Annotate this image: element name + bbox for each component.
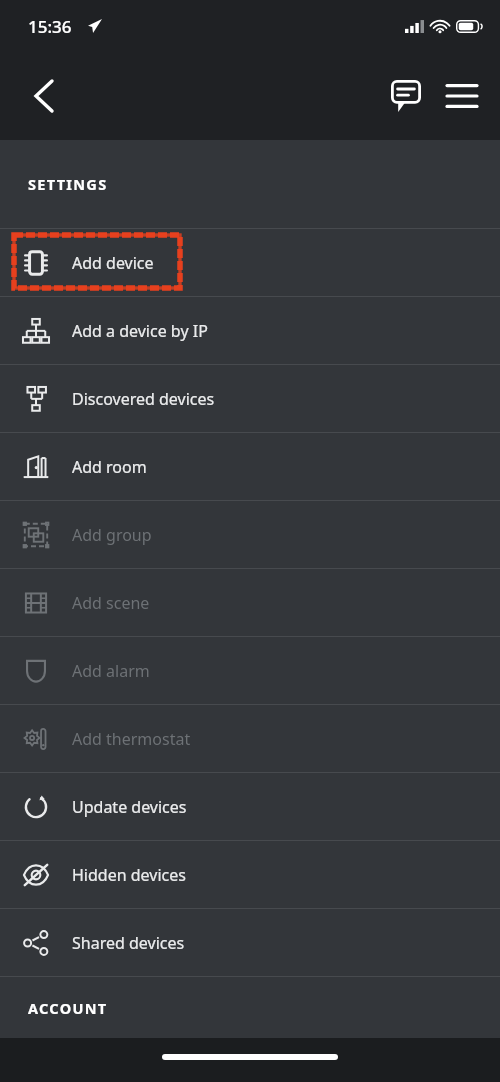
staticText: Add alarm	[72, 660, 150, 682]
button[interactable]: Add thermostat	[0, 705, 500, 772]
button[interactable]: Add group	[0, 501, 500, 568]
staticText: Hidden devices	[72, 864, 186, 886]
staticText: Add thermostat	[72, 728, 191, 750]
staticText: Shared devices	[72, 932, 185, 954]
staticText: Add room	[72, 456, 147, 478]
button[interactable]: Update devices	[0, 773, 500, 840]
button[interactable]: Back	[14, 66, 74, 126]
staticText: 15:36	[28, 15, 72, 38]
staticText: Update devices	[72, 796, 187, 818]
button[interactable]: Menu	[434, 68, 490, 124]
staticText: ACCOUNT	[28, 998, 108, 1018]
button[interactable]: Add a device by IP	[0, 297, 500, 364]
button[interactable]: Add device	[0, 229, 500, 296]
button[interactable]: Hidden devices	[0, 841, 500, 908]
button[interactable]: Add alarm	[0, 637, 500, 704]
staticText: SETTINGS	[28, 174, 108, 194]
staticText: Discovered devices	[72, 388, 215, 410]
button[interactable]: Shared devices	[0, 909, 500, 976]
button[interactable]: Messages	[378, 68, 434, 124]
button[interactable]: Add scene	[0, 569, 500, 636]
button[interactable]: Add room	[0, 433, 500, 500]
staticText: Add scene	[72, 592, 150, 614]
button[interactable]: Discovered devices	[0, 365, 500, 432]
staticText: Add a device by IP	[72, 320, 208, 342]
staticText: Add device	[72, 252, 154, 274]
staticText: Add group	[72, 524, 152, 546]
